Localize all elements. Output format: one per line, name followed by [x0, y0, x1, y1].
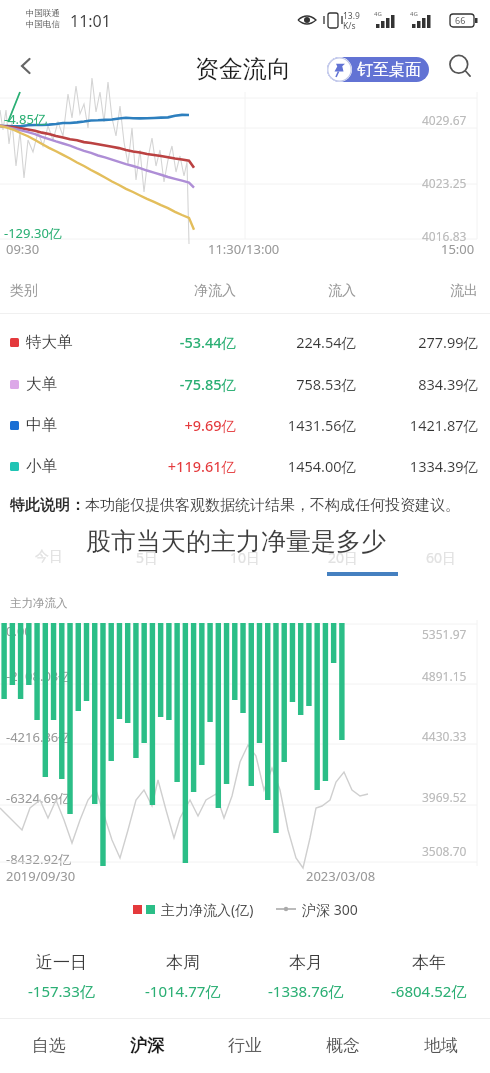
staticText: 2023/03/08 [306, 867, 376, 885]
button[interactable]: Back [6, 46, 46, 86]
staticText: 沪深 300 [302, 900, 358, 919]
staticText: 1431.56亿 [236, 415, 356, 435]
staticText: 主力净流入 [10, 596, 68, 610]
staticText: K/s [343, 20, 356, 32]
button[interactable]: 60日 [392, 546, 490, 568]
staticText: 行业 [228, 1035, 262, 1056]
staticText: 66 [455, 14, 466, 26]
button[interactable]: 类别 [0, 278, 490, 304]
staticText: -4216.36亿 [6, 728, 72, 746]
button[interactable]: 小单 [0, 453, 490, 479]
staticText: 近一日 [36, 952, 87, 973]
staticText: 特大单 [26, 332, 73, 352]
button[interactable]: 沪深 [98, 1018, 196, 1073]
staticText: 大单 [26, 374, 57, 394]
button[interactable]: 今日 [0, 546, 98, 568]
staticText: 5351.97 [422, 626, 467, 642]
staticText: 特此说明： [10, 496, 85, 515]
staticText: -75.85亿 [160, 374, 236, 394]
staticText: 0.00 [6, 622, 32, 640]
staticText: -157.33亿 [28, 981, 95, 1001]
staticText: -8432.92亿 [6, 850, 72, 868]
staticText: 4G [374, 10, 382, 18]
staticText: -4.85亿 [4, 110, 47, 128]
staticText: 758.53亿 [236, 374, 356, 394]
staticText: 流出 [356, 282, 478, 300]
staticText: -6804.52亿 [391, 981, 467, 1001]
staticText: 中单 [26, 415, 57, 435]
button[interactable]: 20日 [294, 546, 392, 568]
staticText: 1421.87亿 [356, 415, 478, 435]
staticText: 11:01 [70, 10, 111, 32]
staticText: 15:00 [441, 240, 475, 258]
button[interactable]: 特大单 [0, 329, 490, 355]
staticText: 1454.00亿 [236, 456, 356, 476]
button[interactable]: 本年 [367, 949, 490, 1005]
staticText: 3969.52 [422, 789, 467, 805]
staticText: -2108.03亿 [6, 667, 72, 685]
staticText: -1014.77亿 [145, 981, 221, 1001]
staticText: 概念 [326, 1035, 360, 1056]
staticText: 中国电信 [26, 19, 60, 30]
staticText: 本年 [412, 952, 446, 973]
staticText: 自选 [32, 1035, 66, 1056]
staticText: 10日 [230, 548, 261, 567]
staticText: 本周 [166, 952, 200, 973]
button[interactable]: 钉至桌面 [327, 57, 429, 82]
staticText: 本功能仅提供客观数据统计结果，不构成任何投资建议。 [85, 496, 460, 515]
button[interactable]: 近一日 [0, 949, 122, 1005]
staticText: 中国联通 [26, 8, 60, 19]
staticText: 4891.15 [422, 668, 467, 684]
button[interactable]: 行业 [196, 1018, 294, 1073]
staticText: 4023.25 [422, 175, 467, 191]
staticText: 3508.70 [422, 843, 467, 859]
staticText: 钉至桌面 [357, 60, 421, 80]
button[interactable]: 中单 [0, 412, 490, 438]
staticText: 类别 [10, 282, 38, 300]
staticText: 沪深 [130, 1035, 164, 1056]
button[interactable]: 自选 [0, 1018, 98, 1073]
staticText: 13.9 [343, 10, 360, 22]
button[interactable]: 大单 [0, 371, 490, 397]
staticText: 5日 [136, 548, 159, 567]
staticText: 224.54亿 [236, 332, 356, 352]
staticText: 834.39亿 [356, 374, 478, 394]
staticText: -1338.76亿 [268, 981, 344, 1001]
staticText: 主力净流入(亿) [161, 900, 254, 919]
staticText: 11:30/13:00 [208, 240, 280, 258]
button[interactable]: 本月 [244, 949, 367, 1005]
staticText: 277.99亿 [356, 332, 478, 352]
staticText: 60日 [426, 548, 457, 567]
button[interactable]: 10日 [196, 546, 294, 568]
staticText: 股市当天的主力净量是多少 [86, 526, 386, 557]
button[interactable]: 本周 [122, 949, 244, 1005]
staticText: 20日 [328, 548, 359, 567]
button[interactable]: 地域 [392, 1018, 490, 1073]
staticText: 今日 [35, 548, 63, 566]
staticText: 4016.83 [422, 228, 467, 244]
staticText: 资金流向 [195, 54, 291, 84]
staticText: 净流入 [160, 282, 236, 300]
staticText: 2019/09/30 [6, 867, 76, 885]
staticText: 4029.67 [422, 112, 467, 128]
staticText: 小单 [26, 456, 57, 476]
button[interactable]: Search [440, 46, 480, 86]
staticText: 4G [410, 10, 418, 18]
staticText: 地域 [424, 1035, 458, 1056]
staticText: -129.30亿 [4, 224, 62, 242]
button[interactable]: 5日 [98, 546, 196, 568]
staticText: -53.44亿 [160, 332, 236, 352]
staticText: 4430.33 [422, 728, 467, 744]
staticText: 流入 [236, 282, 356, 300]
staticText: +9.69亿 [160, 415, 236, 435]
staticText: -6324.69亿 [6, 789, 72, 807]
staticText: 1334.39亿 [356, 456, 478, 476]
button[interactable]: 概念 [294, 1018, 392, 1073]
staticText: +119.61亿 [160, 456, 236, 476]
staticText: 09:30 [6, 240, 40, 258]
staticText: 本月 [289, 952, 323, 973]
